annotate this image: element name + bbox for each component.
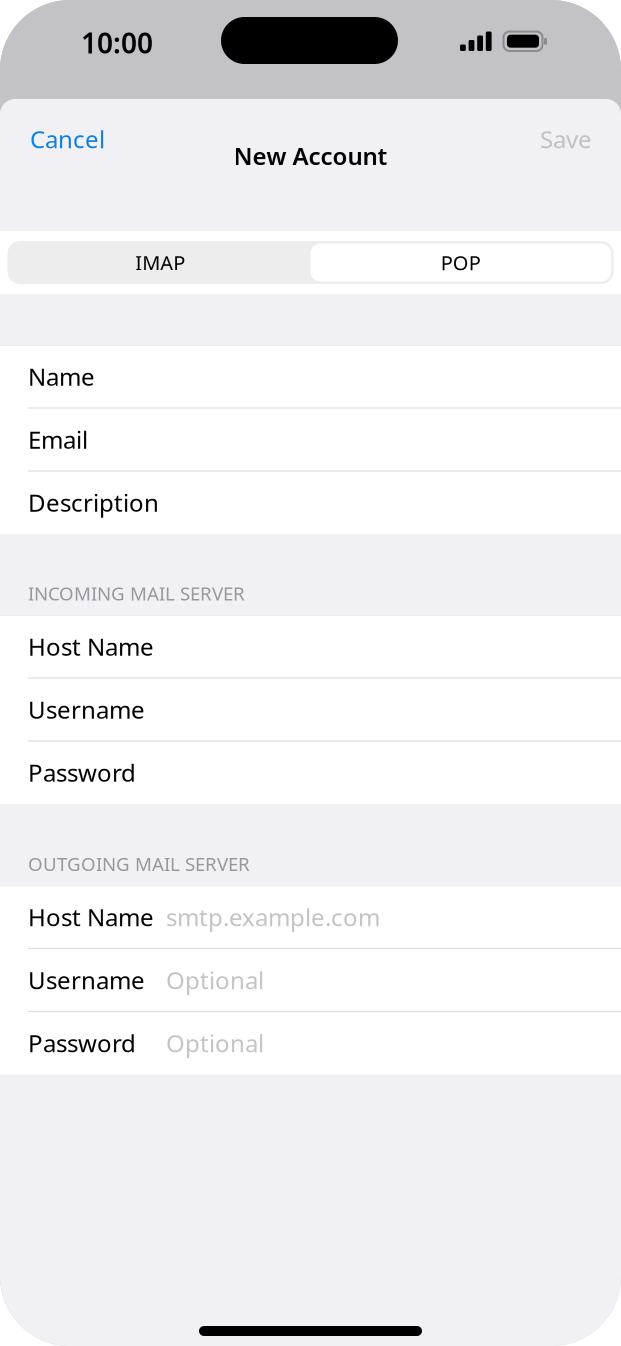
staticText: POP	[441, 249, 481, 276]
button[interactable]: Password	[0, 742, 621, 805]
staticText: Username	[28, 964, 145, 996]
staticText: Email	[28, 424, 88, 455]
staticText: IMAP	[135, 249, 185, 276]
button[interactable]: Email	[0, 409, 621, 472]
staticText: Optional	[166, 1027, 264, 1059]
button[interactable]: Password	[0, 1012, 621, 1075]
staticText: Save	[540, 123, 592, 155]
button[interactable]: Host Name	[0, 886, 621, 949]
button[interactable]: IMAP	[10, 243, 310, 281]
staticText: Password	[28, 757, 136, 788]
staticText: Host Name	[28, 901, 154, 933]
button[interactable]: Host Name	[0, 616, 621, 679]
staticText: Optional	[166, 964, 264, 996]
staticText: Username	[28, 694, 145, 725]
button[interactable]: Cancel	[0, 115, 123, 163]
staticText: Name	[28, 361, 95, 392]
button[interactable]: Description	[0, 472, 621, 535]
staticText: Host Name	[28, 631, 154, 662]
button[interactable]: Save	[522, 115, 621, 163]
staticText: Password	[28, 1027, 136, 1059]
button[interactable]: Name	[0, 346, 621, 409]
staticText: OUTGOING MAIL SERVER	[28, 851, 250, 876]
staticText: 10:00	[81, 24, 153, 61]
staticText: New Account	[233, 140, 387, 172]
button[interactable]: Username	[0, 949, 621, 1012]
button[interactable]: POP	[310, 243, 611, 281]
button[interactable]: Username	[0, 679, 621, 742]
staticText: Description	[28, 487, 159, 518]
staticText: Cancel	[30, 123, 105, 155]
staticText: INCOMING MAIL SERVER	[28, 581, 245, 606]
staticText: smtp.example.com	[166, 901, 380, 933]
